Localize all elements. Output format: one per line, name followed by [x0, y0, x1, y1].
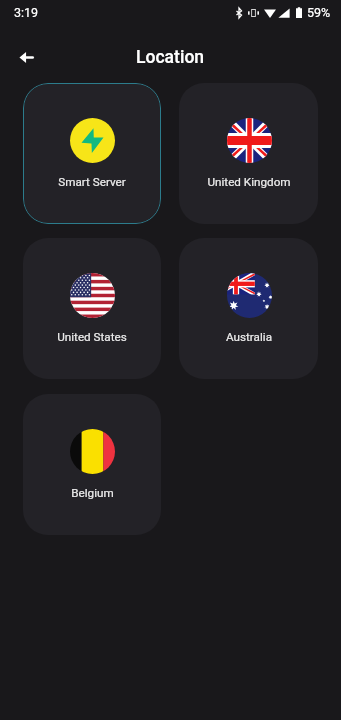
button[interactable]: Back: [10, 41, 42, 73]
staticText: United Kingdom: [207, 175, 291, 189]
staticText: 3:19: [14, 5, 39, 20]
staticText: Australia: [226, 330, 272, 344]
staticText: Location: [136, 47, 205, 68]
staticText: 59%: [307, 5, 331, 20]
staticText: Smart Server: [58, 175, 126, 189]
button[interactable]: Belgium: [23, 394, 161, 535]
button[interactable]: United States: [23, 238, 161, 379]
button[interactable]: Smart Server: [23, 83, 161, 224]
button[interactable]: Australia: [179, 238, 318, 379]
staticText: United States: [57, 330, 127, 344]
button[interactable]: United Kingdom: [179, 83, 318, 224]
staticText: Belgium: [71, 486, 114, 500]
